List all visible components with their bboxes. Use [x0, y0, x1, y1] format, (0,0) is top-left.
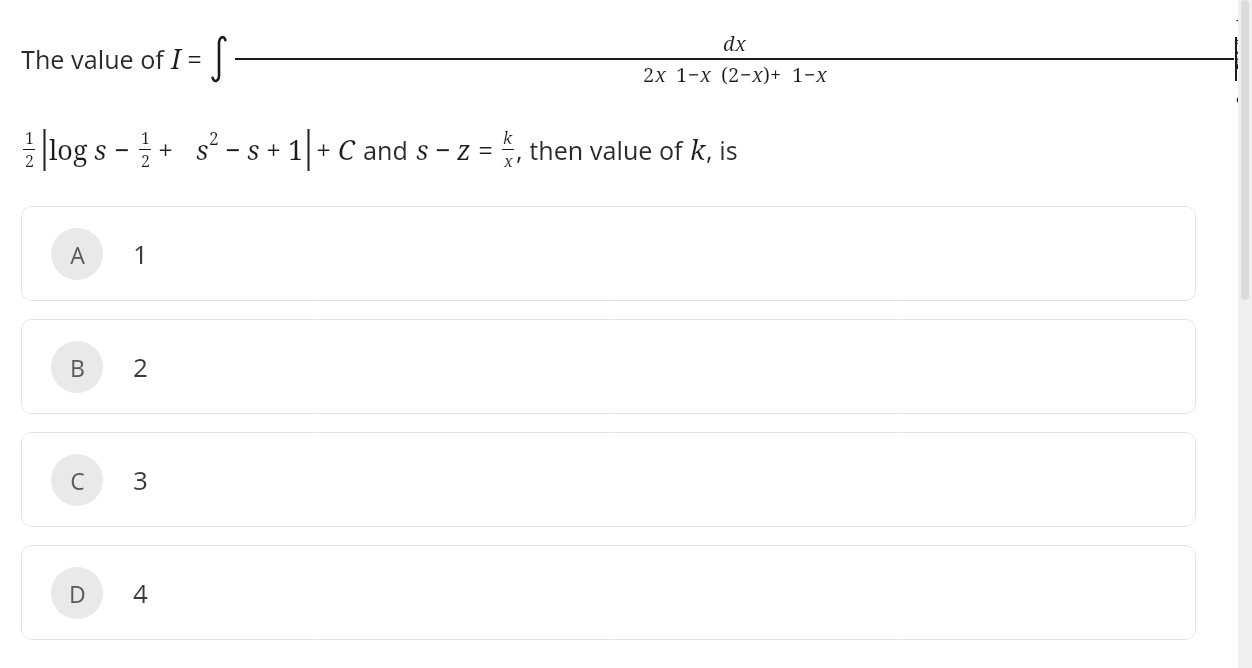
staticText: +	[158, 131, 174, 168]
staticText: , is	[706, 133, 738, 167]
button[interactable]: B	[21, 319, 1196, 414]
staticText: −	[740, 61, 752, 88]
staticText: 2	[643, 61, 655, 88]
staticText: 4	[133, 575, 148, 610]
staticText: =	[187, 40, 203, 77]
staticText: −	[435, 131, 451, 168]
staticText: z	[457, 131, 471, 168]
staticText: 1	[676, 61, 688, 88]
staticText: 1	[792, 61, 804, 88]
staticText: 2	[728, 61, 740, 88]
staticText: d	[723, 30, 735, 57]
staticText: −	[804, 61, 816, 88]
staticText: , then value of	[516, 133, 690, 167]
button[interactable]: D	[21, 545, 1196, 640]
staticText: (	[721, 61, 728, 88]
staticText: 1	[141, 127, 150, 149]
staticText: The value of	[21, 42, 171, 76]
staticText: 3	[133, 462, 148, 497]
staticText: x	[735, 30, 746, 57]
staticText: −	[114, 131, 130, 168]
staticText: log	[49, 131, 88, 168]
staticText: +	[316, 131, 332, 168]
staticText: B	[70, 352, 85, 383]
staticText: 2	[141, 150, 150, 172]
staticText: s	[247, 131, 260, 168]
staticText: =	[478, 131, 494, 168]
staticText: D	[69, 578, 86, 609]
staticText: 1	[25, 127, 34, 149]
staticText: x	[504, 150, 513, 172]
staticText: C	[70, 465, 85, 496]
staticText: −	[225, 131, 241, 168]
staticText: k	[690, 131, 706, 168]
staticText: 1	[288, 131, 304, 168]
staticText: s	[94, 131, 107, 168]
staticText: x	[700, 61, 711, 88]
staticText: s	[196, 131, 209, 168]
staticText: s	[416, 131, 429, 168]
staticText: and	[363, 133, 408, 167]
staticText: 2	[209, 127, 219, 151]
staticText: k	[503, 127, 513, 149]
staticText: x	[752, 61, 763, 88]
staticText: +	[266, 131, 282, 168]
staticText: x	[816, 61, 827, 88]
staticText: 2	[133, 349, 148, 384]
button[interactable]: A	[21, 206, 1196, 301]
button[interactable]: C	[21, 432, 1196, 527]
staticText: x	[655, 61, 666, 88]
staticText: C	[338, 131, 355, 168]
staticText: )+	[763, 61, 782, 88]
staticText: I	[171, 40, 181, 77]
staticText: −	[688, 61, 700, 88]
staticText: A	[70, 239, 85, 270]
staticText: 1	[133, 236, 148, 271]
staticText: 2	[25, 150, 34, 172]
